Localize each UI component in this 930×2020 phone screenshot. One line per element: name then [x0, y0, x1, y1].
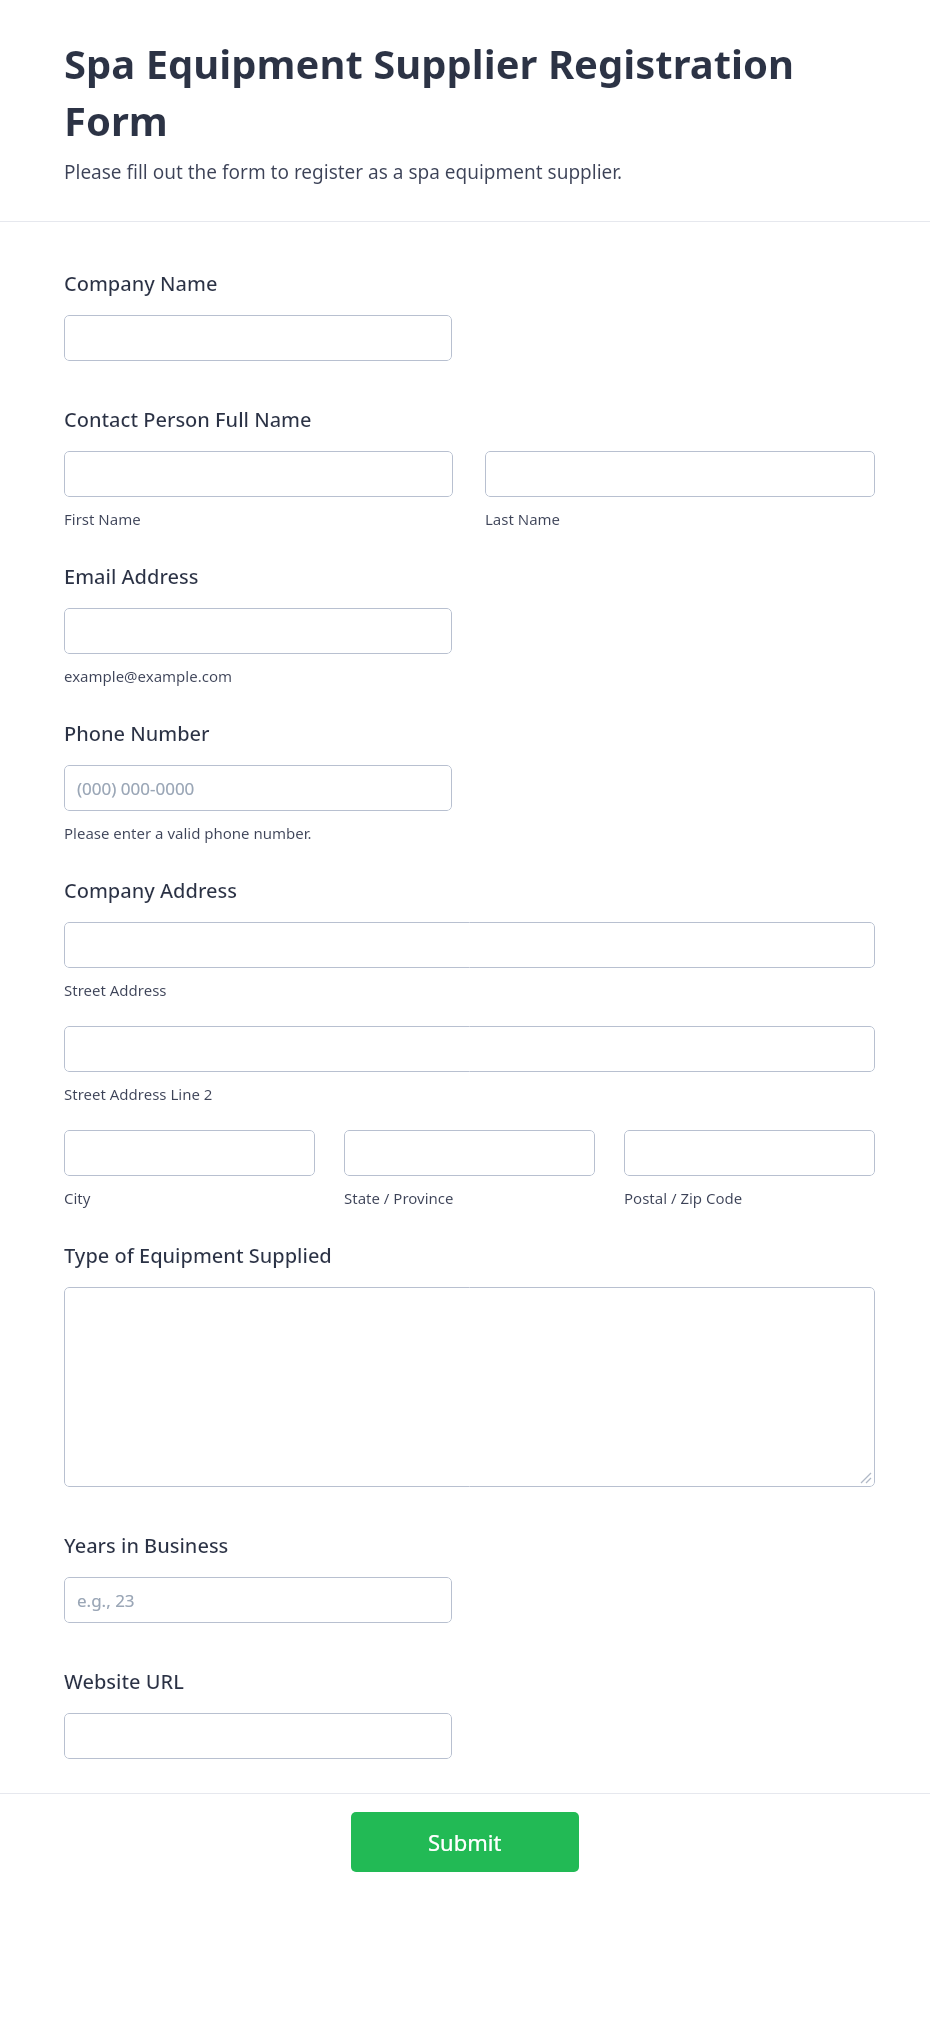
button[interactable] — [64, 451, 453, 497]
staticText: Website URL — [64, 1668, 184, 1695]
button[interactable] — [624, 1130, 875, 1176]
staticText: (000) 000-0000 — [77, 777, 195, 800]
button[interactable] — [64, 315, 452, 361]
button[interactable] — [64, 1287, 875, 1487]
staticText: State / Province — [344, 1188, 454, 1208]
button[interactable] — [485, 451, 875, 497]
button[interactable]: e.g., 23 — [64, 1577, 452, 1623]
staticText: Last Name — [485, 509, 561, 529]
staticText: Company Address — [64, 877, 237, 904]
button[interactable]: Submit — [351, 1812, 579, 1872]
staticText: Company Name — [64, 270, 218, 297]
staticText: Please fill out the form to register as … — [64, 159, 623, 185]
button[interactable] — [64, 922, 875, 968]
staticText: Postal / Zip Code — [624, 1188, 743, 1208]
staticText: First Name — [64, 509, 141, 529]
staticText: Submit — [428, 1827, 502, 1857]
button[interactable] — [344, 1130, 595, 1176]
staticText: Spa Equipment Supplier Registration Form — [64, 36, 880, 147]
staticText: Contact Person Full Name — [64, 406, 312, 433]
staticText: Phone Number — [64, 720, 210, 747]
staticText: Email Address — [64, 563, 199, 590]
staticText: Years in Business — [64, 1532, 229, 1559]
button[interactable] — [64, 1026, 875, 1072]
button[interactable] — [64, 1130, 315, 1176]
staticText: Street Address — [64, 980, 167, 1000]
button[interactable] — [64, 1713, 452, 1759]
button[interactable]: (000) 000-0000 — [64, 765, 452, 811]
staticText: City — [64, 1188, 91, 1208]
staticText: Please enter a valid phone number. — [64, 823, 312, 843]
staticText: e.g., 23 — [77, 1589, 135, 1612]
staticText: Type of Equipment Supplied — [64, 1242, 332, 1269]
button[interactable] — [64, 608, 452, 654]
staticText: Street Address Line 2 — [64, 1084, 213, 1104]
staticText: example@example.com — [64, 666, 232, 686]
